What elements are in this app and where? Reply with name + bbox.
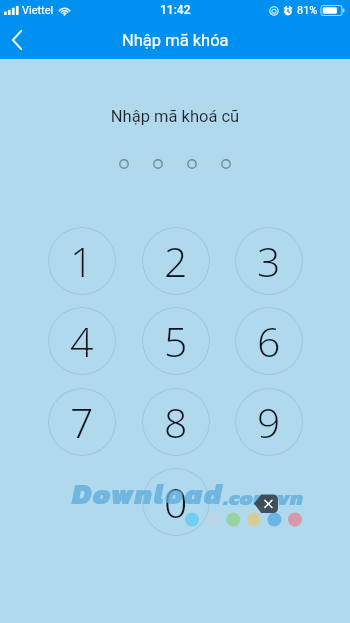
button[interactable]: 4: [48, 307, 116, 375]
staticText: 8: [164, 394, 188, 450]
staticText: 6: [257, 313, 281, 369]
staticText: 3: [257, 233, 281, 289]
staticText: 4: [70, 313, 94, 369]
staticText: Download: [72, 473, 224, 515]
button[interactable]: Close watermark: [254, 494, 278, 513]
staticText: 7: [70, 394, 94, 450]
staticText: Nhập mã khóa: [122, 31, 229, 50]
button[interactable]: 2: [142, 227, 210, 295]
staticText: 81%: [297, 4, 318, 17]
button[interactable]: 0: [142, 468, 210, 536]
staticText: Viettel: [22, 4, 54, 17]
button[interactable]: 7: [48, 388, 116, 456]
button[interactable]: Back: [0, 20, 40, 59]
staticText: Nhập mã khoá cũ: [0, 107, 350, 126]
staticText: 5: [164, 313, 188, 369]
button[interactable]: 9: [235, 388, 303, 456]
staticText: 0: [164, 474, 188, 530]
staticText: 2: [164, 233, 188, 289]
button[interactable]: 1: [48, 227, 116, 295]
button[interactable]: 5: [142, 307, 210, 375]
button[interactable]: 6: [235, 307, 303, 375]
staticText: 9: [257, 394, 281, 450]
button[interactable]: 3: [235, 227, 303, 295]
staticText: .com.vn: [224, 482, 304, 513]
staticText: 11:42: [160, 3, 191, 17]
button[interactable]: 8: [142, 388, 210, 456]
staticText: 1: [70, 233, 94, 289]
